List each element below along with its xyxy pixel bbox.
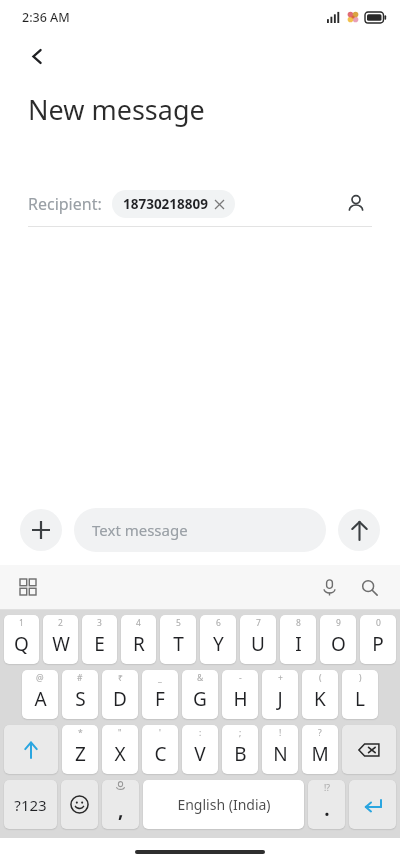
staticText: Z <box>75 741 86 767</box>
staticText: @ <box>36 672 44 684</box>
button[interactable]: Contacts <box>340 188 372 220</box>
button[interactable]: ?123 <box>4 780 57 829</box>
staticText: Text message <box>92 520 188 540</box>
staticText: 2 <box>58 617 63 629</box>
staticText: _ <box>158 672 162 684</box>
button[interactable]: Voice input <box>312 570 346 604</box>
button[interactable]: Send <box>338 509 380 551</box>
staticText: 6 <box>216 617 221 629</box>
staticText: K <box>314 686 326 712</box>
staticText: 0 <box>376 617 381 629</box>
button[interactable]: ! <box>262 725 298 774</box>
staticText: ₹ <box>118 672 123 684</box>
staticText: English (India) <box>177 795 271 814</box>
staticText: G <box>193 686 207 712</box>
staticText: . <box>324 796 330 822</box>
staticText: F <box>155 686 165 712</box>
staticText: New message <box>28 91 205 128</box>
staticText: 4 <box>136 617 141 629</box>
button[interactable]: 7 <box>240 615 276 664</box>
staticText: 1 <box>19 617 24 629</box>
button[interactable]: _ <box>142 670 178 719</box>
button[interactable]: ( <box>302 670 338 719</box>
button[interactable]: Shift <box>4 725 58 774</box>
button[interactable]: 1 <box>4 615 39 664</box>
staticText: + <box>278 672 283 684</box>
button[interactable]: : <box>182 725 218 774</box>
button[interactable]: 8 <box>280 615 316 664</box>
staticText: 8 <box>296 617 301 629</box>
staticText: T <box>173 631 184 657</box>
button[interactable]: @ <box>22 670 58 719</box>
staticText: I <box>295 631 302 657</box>
button[interactable]: 18730218809 <box>123 195 224 213</box>
staticText: * <box>78 727 83 739</box>
button[interactable]: Back <box>20 39 54 73</box>
button[interactable]: ₹ <box>102 670 138 719</box>
button[interactable]: Add attachment <box>20 509 62 551</box>
staticText: V <box>194 741 206 767</box>
button[interactable]: Backspace <box>342 725 396 774</box>
button[interactable]: Search <box>352 570 386 604</box>
staticText: J <box>277 686 283 712</box>
staticText: 9 <box>336 617 341 629</box>
button[interactable]: ; <box>222 725 258 774</box>
button[interactable]: English (India) <box>143 780 304 829</box>
staticText: ) <box>359 672 362 684</box>
staticText: !? <box>324 782 330 794</box>
staticText: 3 <box>97 617 102 629</box>
staticText: O <box>331 631 346 657</box>
button[interactable]: 6 <box>200 615 236 664</box>
button[interactable]: & <box>182 670 218 719</box>
staticText: ?123 <box>14 795 47 815</box>
staticText: 18730218809 <box>123 195 208 213</box>
button[interactable]: 4 <box>121 615 156 664</box>
staticText: ( <box>319 672 322 684</box>
staticText: ' <box>159 727 161 739</box>
staticText: " <box>118 727 122 739</box>
button[interactable]: Emoji <box>61 780 98 829</box>
staticText: Recipient: <box>28 193 102 215</box>
staticText: 2:36 AM <box>22 9 70 26</box>
staticText: C <box>154 741 167 767</box>
button[interactable]: 3 <box>82 615 117 664</box>
button[interactable]: + <box>262 670 298 719</box>
staticText: Y <box>213 631 224 657</box>
button[interactable]: Toolbar <box>12 571 44 603</box>
staticText: : <box>199 727 202 739</box>
staticText: - <box>239 672 242 684</box>
button[interactable]: 2 <box>43 615 78 664</box>
button[interactable]: - <box>222 670 258 719</box>
button[interactable]: * <box>62 725 98 774</box>
staticText: X <box>114 741 126 767</box>
staticText: H <box>233 686 248 712</box>
button[interactable]: " <box>102 725 138 774</box>
button[interactable]: ? <box>302 725 338 774</box>
staticText: 5 <box>176 617 181 629</box>
staticText: U <box>251 631 265 657</box>
staticText: D <box>113 686 127 712</box>
button[interactable]: 5 <box>160 615 196 664</box>
staticText: R <box>133 631 145 657</box>
button[interactable]: !? <box>308 780 345 829</box>
staticText: W <box>52 631 70 657</box>
staticText: , <box>118 797 124 823</box>
staticText: E <box>94 631 105 657</box>
button[interactable]: Text message <box>74 508 326 552</box>
staticText: 7 <box>256 617 261 629</box>
button[interactable]: 0 <box>360 615 396 664</box>
staticText: A <box>34 686 47 712</box>
staticText: & <box>197 672 204 684</box>
button[interactable]: Enter <box>349 780 396 829</box>
staticText: L <box>355 686 365 712</box>
button[interactable]: Comma <box>102 780 139 829</box>
staticText: ? <box>318 727 322 739</box>
staticText: N <box>273 741 288 767</box>
staticText: ! <box>279 727 282 739</box>
staticText: Q <box>14 631 29 657</box>
button[interactable]: ) <box>342 670 378 719</box>
button[interactable]: 9 <box>320 615 356 664</box>
button[interactable]: ' <box>142 725 178 774</box>
button[interactable]: # <box>62 670 98 719</box>
staticText: ; <box>239 727 242 739</box>
